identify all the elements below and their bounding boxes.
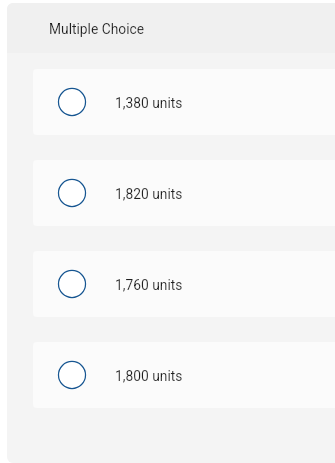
other: Choose 1,380 units [57, 87, 87, 117]
button[interactable]: Choose 1,380 units [33, 69, 335, 135]
staticText: Multiple Choice [49, 21, 145, 37]
button[interactable]: Choose 1,800 units [33, 342, 335, 408]
button[interactable]: Choose 1,820 units [33, 160, 335, 226]
other: Choose 1,760 units [57, 269, 87, 299]
staticText: 1,800 units [115, 368, 183, 384]
button[interactable]: Choose 1,760 units [33, 251, 335, 317]
other: Choose 1,800 units [57, 360, 87, 390]
staticText: 1,760 units [115, 277, 183, 293]
other: Choose 1,820 units [57, 178, 87, 208]
staticText: 1,820 units [115, 186, 183, 202]
staticText: 1,380 units [115, 95, 183, 111]
